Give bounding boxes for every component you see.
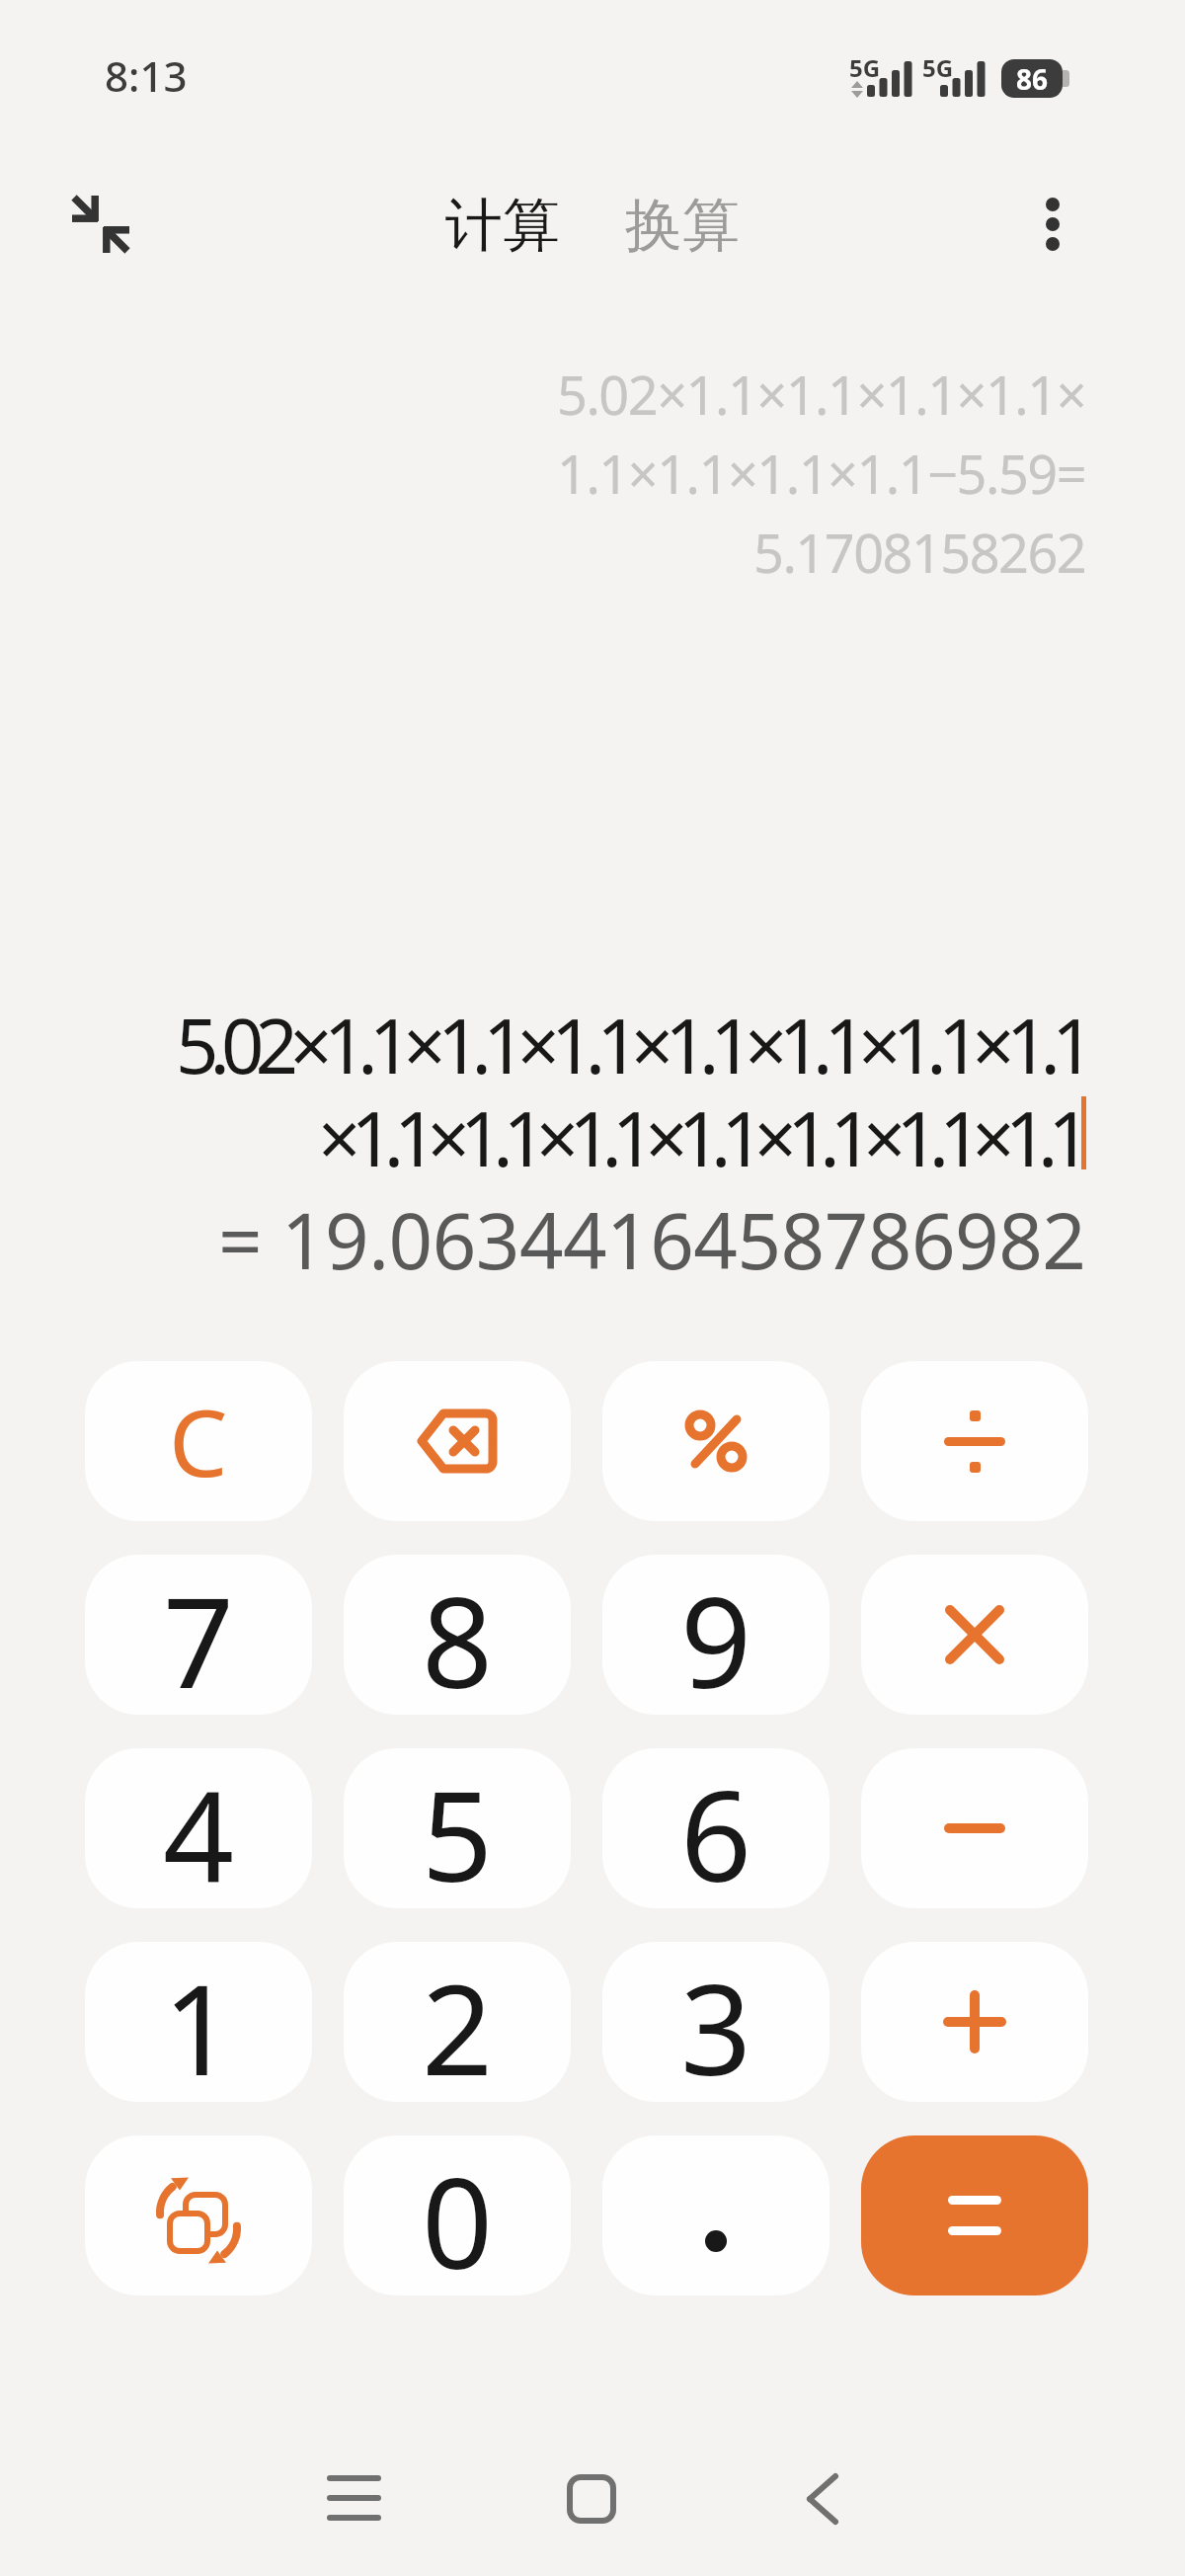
staticText: 8 <box>422 1555 494 1715</box>
staticText: C <box>169 1378 228 1504</box>
button[interactable] <box>71 195 130 254</box>
staticText: 4 <box>163 1748 235 1908</box>
button[interactable]: 5 <box>344 1748 571 1908</box>
button[interactable]: 9 <box>602 1555 829 1715</box>
button[interactable]: 4 <box>85 1748 312 1908</box>
button[interactable]: 2 <box>344 1942 571 2102</box>
button[interactable]: 0 <box>344 2135 571 2295</box>
staticText: 7 <box>163 1555 235 1715</box>
staticText: 5 <box>422 1748 494 1908</box>
staticText: 5G <box>849 51 881 84</box>
button[interactable] <box>344 1361 571 1521</box>
staticText: 5.02×1.1×1.1×1.1×1.1×1.1×1.1×1.1 <box>176 994 1086 1087</box>
button[interactable]: 7 <box>85 1555 312 1715</box>
staticText: 9 <box>680 1555 752 1715</box>
staticText: 3 <box>680 1942 752 2102</box>
button[interactable]: 6 <box>602 1748 829 1908</box>
staticText: = 19.0634416458786982 <box>218 1187 1086 1280</box>
staticText: 5.1708158262 <box>753 516 1086 595</box>
staticText: 86 <box>1016 60 1049 98</box>
button[interactable] <box>861 1942 1088 2102</box>
button[interactable] <box>861 1748 1088 1908</box>
button[interactable] <box>861 2135 1088 2295</box>
staticText: 1 <box>163 1942 235 2102</box>
button[interactable] <box>330 2475 378 2523</box>
staticText: 5G <box>922 51 954 84</box>
staticText: 2 <box>422 1942 494 2102</box>
staticText: 5.02×1.1×1.1×1.1×1.1× <box>557 358 1086 437</box>
staticText: 6 <box>680 1748 752 1908</box>
button[interactable] <box>85 2135 312 2295</box>
button[interactable]: C <box>85 1361 312 1521</box>
button[interactable]: 1 <box>85 1942 312 2102</box>
button[interactable] <box>861 1555 1088 1715</box>
button[interactable]: 计算 <box>445 190 560 262</box>
button[interactable]: 3 <box>602 1942 829 2102</box>
button[interactable] <box>806 2474 839 2524</box>
staticText: 1.1×1.1×1.1×1.1−5.59= <box>557 437 1086 516</box>
button[interactable] <box>861 1361 1088 1521</box>
button[interactable]: 8 <box>344 1555 571 1715</box>
button[interactable] <box>602 1361 829 1521</box>
button[interactable]: 换算 <box>625 190 740 262</box>
button[interactable] <box>1033 199 1072 250</box>
button[interactable] <box>602 2135 829 2295</box>
button[interactable] <box>567 2474 616 2524</box>
staticText: ×1.1×1.1×1.1×1.1×1.1×1.1×1.1 <box>318 1087 1081 1179</box>
staticText: 0 <box>422 2135 494 2295</box>
staticText: 8:13 <box>105 47 188 104</box>
